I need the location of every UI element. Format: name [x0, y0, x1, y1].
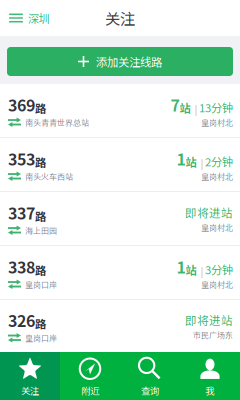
button[interactable]: 我	[180, 352, 240, 400]
staticText: 皇岗村北	[201, 116, 233, 128]
staticText: 369	[8, 93, 35, 116]
staticText: 添加关注线路	[96, 53, 162, 70]
staticText: 皇岗村北	[201, 170, 233, 182]
staticText: 7	[170, 93, 179, 116]
staticText: 皇岗口岸	[25, 278, 57, 290]
staticText: 南头火车西站	[25, 170, 73, 182]
button[interactable]: 查询	[120, 352, 180, 400]
staticText: 皇岗村北	[201, 221, 233, 233]
staticText: 查询	[141, 384, 159, 397]
staticText: 2分钟	[205, 153, 233, 169]
staticText: 附近	[81, 384, 99, 397]
staticText: 关注	[21, 384, 39, 397]
staticText: 我	[205, 384, 214, 397]
staticText: 337	[8, 201, 35, 224]
staticText: 13分钟	[199, 99, 233, 115]
staticText: 路	[35, 208, 46, 224]
staticText: 站	[185, 262, 196, 278]
button[interactable]: 深圳	[0, 0, 57, 36]
button[interactable]: 添加关注线路	[7, 47, 233, 76]
staticText: 1	[176, 255, 185, 278]
staticText: 3分钟	[205, 261, 233, 277]
staticText: 1	[176, 147, 185, 170]
button[interactable]: 369	[0, 84, 240, 137]
button[interactable]: 337	[0, 192, 240, 245]
button[interactable]: 附近	[60, 352, 120, 400]
staticText: 即将进站	[185, 204, 233, 221]
staticText: 海上田园	[25, 224, 57, 236]
staticText: 南头青青世界总站	[25, 116, 89, 128]
staticText: 站	[185, 154, 196, 170]
staticText: 路	[35, 315, 46, 331]
staticText: 路	[35, 262, 46, 278]
staticText: 即将进站	[185, 312, 233, 328]
staticText: 皇岗村北	[201, 278, 233, 290]
staticText: 338	[8, 255, 35, 278]
staticText: 326	[8, 308, 35, 332]
button[interactable]: 326	[0, 300, 240, 352]
button[interactable]: 353	[0, 138, 240, 191]
staticText: 路	[35, 154, 46, 170]
staticText: 关注	[105, 7, 135, 29]
staticText: 站	[179, 100, 190, 116]
staticText: 皇岗口岸	[25, 332, 57, 344]
staticText: 市民广场东	[193, 329, 233, 340]
staticText: 路	[35, 100, 46, 116]
staticText: 353	[8, 147, 35, 170]
staticText: 深圳	[27, 10, 49, 26]
button[interactable]: 关注	[0, 352, 60, 400]
button[interactable]: 338	[0, 246, 240, 299]
